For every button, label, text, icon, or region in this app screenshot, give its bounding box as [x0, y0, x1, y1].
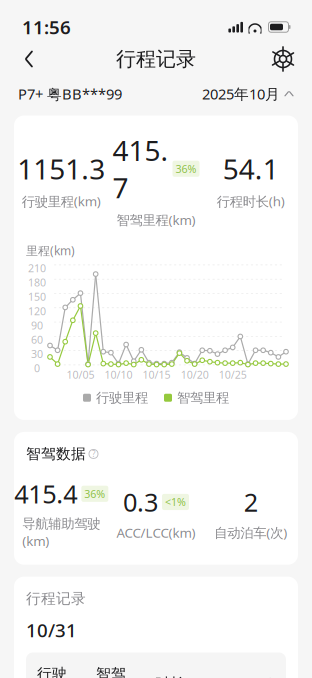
staticText: 里程(km) — [26, 243, 75, 258]
staticText: 36% — [84, 487, 105, 501]
staticText: 180 — [28, 275, 46, 289]
button[interactable]: 行驶 6.4km — [26, 652, 286, 678]
staticText: 10/10 — [104, 368, 132, 382]
staticText: 90 — [31, 318, 43, 332]
staticText: 智驾数据 — [26, 445, 86, 463]
staticText: 智驾 0.0km — [96, 663, 138, 678]
staticText: 智驾里程 — [177, 390, 229, 406]
staticText: 1151.3 — [17, 150, 105, 187]
staticText: 行程时长(h) — [217, 192, 285, 210]
staticText: 36% — [175, 162, 196, 176]
staticText: 30 — [31, 347, 43, 361]
button[interactable]: 2025年10月 — [202, 84, 294, 103]
staticText: 时长 47min — [155, 673, 232, 678]
staticText: 2 — [244, 485, 258, 519]
staticText: ACC/LCC(km) — [116, 524, 195, 541]
staticText: 10/25 — [219, 368, 247, 382]
staticText: 11:56 — [22, 15, 71, 39]
staticText: 2025年10月 — [202, 84, 280, 103]
staticText: ? — [92, 449, 95, 459]
staticText: 10/20 — [181, 368, 209, 382]
staticText: 10/05 — [66, 368, 94, 382]
staticText: 210 — [28, 261, 46, 275]
button[interactable]: 设置 — [268, 44, 298, 74]
staticText: 自动泊车(次) — [214, 524, 287, 541]
staticText: P7+ 粤BB***99 — [18, 84, 122, 104]
staticText: 行驶里程 — [96, 390, 148, 406]
staticText: 行程记录 — [116, 47, 196, 71]
staticText: 0 — [34, 361, 40, 375]
staticText: 54.1 — [223, 150, 279, 187]
staticText: 415.7 — [112, 132, 168, 206]
staticText: 行驶里程(km) — [22, 192, 101, 210]
staticText: 60 — [31, 332, 43, 347]
staticText: 导航辅助驾驶(km) — [22, 516, 100, 550]
staticText: 智驾里程(km) — [116, 211, 195, 229]
staticText: 415.4 — [14, 477, 77, 511]
staticText: 150 — [28, 290, 46, 304]
staticText: 10/31 — [26, 618, 77, 642]
staticText: 0.3 — [123, 485, 158, 519]
staticText: 120 — [28, 304, 46, 318]
staticText: 行程记录 — [26, 590, 86, 608]
staticText: 行驶 6.4km — [37, 663, 79, 678]
button[interactable]: 返回 — [14, 44, 44, 74]
staticText: <1% — [165, 495, 186, 509]
staticText: 10/15 — [143, 368, 171, 382]
